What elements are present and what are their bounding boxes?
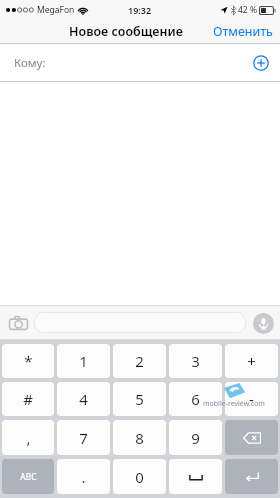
button[interactable]: + bbox=[225, 344, 278, 378]
staticText: MegaFon bbox=[37, 4, 75, 16]
staticText: 7 bbox=[79, 428, 88, 448]
staticText: # bbox=[23, 389, 33, 409]
staticText: Новое сообщение bbox=[69, 23, 183, 40]
staticText: . bbox=[81, 467, 86, 487]
staticText: Кому: bbox=[14, 55, 46, 71]
staticText: 19:32 bbox=[128, 4, 152, 16]
staticText: 42 % bbox=[238, 4, 257, 16]
staticText: + bbox=[247, 351, 256, 371]
button[interactable]: - bbox=[225, 382, 278, 416]
staticText: 9 bbox=[191, 428, 200, 448]
staticText: 2 bbox=[135, 351, 144, 371]
button[interactable]: Add contact bbox=[248, 50, 274, 76]
button[interactable]: 0 bbox=[113, 459, 166, 494]
button[interactable]: 1 bbox=[57, 344, 110, 378]
staticText: - bbox=[249, 389, 254, 409]
staticText: ABC bbox=[20, 471, 37, 483]
button[interactable]: Отменить bbox=[206, 20, 280, 43]
button[interactable]: # bbox=[2, 382, 54, 416]
button[interactable]: Camera bbox=[5, 310, 31, 336]
button[interactable]: 2 bbox=[113, 344, 166, 378]
button[interactable]: 6 bbox=[169, 382, 222, 416]
staticText: 8 bbox=[135, 428, 144, 448]
button[interactable]: Space bbox=[169, 459, 222, 494]
button[interactable]: , bbox=[2, 420, 54, 455]
staticText: 0 bbox=[135, 467, 144, 487]
button[interactable]: * bbox=[2, 344, 54, 378]
staticText: 4 bbox=[79, 389, 88, 409]
button[interactable]: 7 bbox=[57, 420, 110, 455]
button[interactable]: 3 bbox=[169, 344, 222, 378]
button[interactable]: ABC bbox=[2, 459, 54, 494]
staticText: 6 bbox=[191, 389, 200, 409]
button[interactable]: Backspace bbox=[225, 420, 278, 455]
staticText: 1 bbox=[79, 351, 88, 371]
button[interactable]: Return bbox=[225, 459, 278, 494]
button[interactable]: 8 bbox=[113, 420, 166, 455]
button[interactable]: 9 bbox=[169, 420, 222, 455]
button[interactable]: Dictate bbox=[251, 311, 275, 335]
button[interactable]: . bbox=[57, 459, 110, 494]
staticText: Отменить bbox=[213, 23, 273, 40]
button[interactable]: 5 bbox=[113, 382, 166, 416]
staticText: , bbox=[26, 428, 31, 448]
staticText: 3 bbox=[191, 351, 200, 371]
staticText: * bbox=[24, 351, 33, 371]
button[interactable] bbox=[34, 312, 246, 333]
staticText: mobile-review.com bbox=[203, 399, 265, 409]
button[interactable]: 4 bbox=[57, 382, 110, 416]
staticText: 5 bbox=[135, 389, 144, 409]
